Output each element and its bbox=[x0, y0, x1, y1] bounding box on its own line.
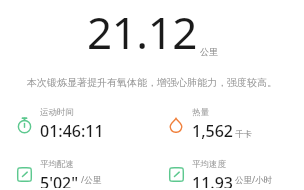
other: Duration bbox=[14, 115, 34, 135]
staticText: 1,562 bbox=[192, 120, 233, 142]
staticText: 平均速度 bbox=[192, 159, 226, 170]
staticText: /公里 bbox=[81, 174, 102, 186]
button[interactable]: Duration bbox=[0, 105, 152, 144]
staticText: 运动时间 bbox=[40, 107, 74, 118]
staticText: 平均配速 bbox=[40, 159, 74, 170]
staticText: 公里/小时 bbox=[235, 174, 273, 186]
staticText: 01:46:11 bbox=[40, 120, 104, 142]
other: Average speed bbox=[166, 164, 186, 184]
staticText: 21.12 bbox=[87, 2, 197, 62]
button[interactable]: Average pace bbox=[0, 157, 152, 190]
button[interactable]: Average speed bbox=[152, 157, 304, 190]
other: Calories bbox=[166, 115, 186, 135]
other: Average pace bbox=[14, 164, 34, 184]
staticText: 本次锻炼显著提升有氧体能，增强心肺能力，强度较高。 bbox=[18, 76, 286, 89]
staticText: 公里 bbox=[200, 46, 218, 57]
staticText: 热量 bbox=[192, 107, 209, 118]
button[interactable]: Calories bbox=[152, 105, 304, 144]
staticText: 千卡 bbox=[235, 129, 252, 140]
staticText: 5'02" bbox=[40, 172, 79, 188]
staticText: 11.93 bbox=[192, 172, 233, 188]
